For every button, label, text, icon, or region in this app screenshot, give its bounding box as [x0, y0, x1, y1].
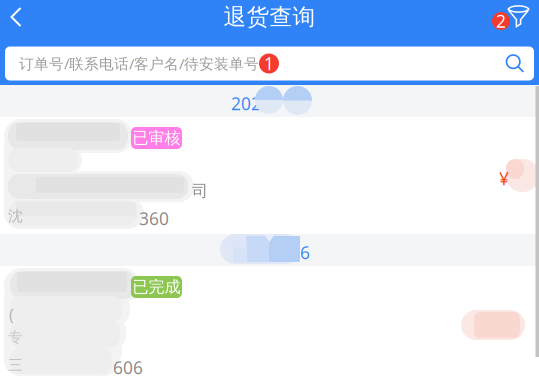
button[interactable]: Search: [505, 53, 525, 73]
staticText: 6: [300, 241, 310, 264]
staticText: 已完成: [132, 277, 180, 297]
staticText: 订单号/联系电话/客户名/待安装单号: [19, 54, 259, 73]
staticText: 202: [231, 92, 261, 115]
staticText: 已审核: [132, 128, 180, 148]
button[interactable]: (: [0, 266, 539, 381]
staticText: 606: [113, 356, 143, 379]
staticText: 360: [139, 207, 169, 230]
staticText: 司: [192, 181, 208, 201]
staticText: 退货查询: [223, 3, 315, 31]
staticText: 2: [496, 9, 506, 32]
button[interactable]: 司: [0, 117, 539, 234]
staticText: ¥: [499, 167, 509, 190]
button[interactable]: Filter: [483, 0, 531, 34]
staticText: 专: [8, 328, 23, 346]
staticText: (: [9, 304, 14, 325]
button[interactable]: Back: [0, 0, 44, 34]
staticText: 1: [264, 52, 274, 75]
staticText: 三: [8, 356, 23, 374]
staticText: 沈: [8, 207, 23, 225]
